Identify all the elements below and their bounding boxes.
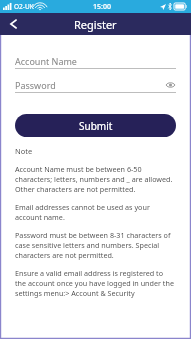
button[interactable]: Password [15, 78, 176, 93]
button[interactable]: Submit [15, 114, 176, 137]
staticText: Password [15, 79, 56, 91]
staticText: Email addresses cannot be used as your a… [15, 202, 176, 222]
staticText: Account Name [15, 55, 77, 67]
button[interactable]: Back [0, 13, 26, 35]
staticText: 15:00 [93, 2, 111, 12]
staticText: Note [15, 146, 33, 156]
button[interactable]: Account Name [15, 54, 176, 69]
staticText: Account Name must be between 6-50 charac… [15, 164, 176, 194]
staticText: Submit [79, 119, 113, 133]
staticText: Register [74, 17, 117, 32]
staticText: Password must be between 8-31 characters… [15, 230, 176, 260]
staticText: O2-UK [14, 2, 34, 11]
staticText: Ensure a valid email address is register… [15, 268, 176, 298]
button[interactable]: Show password [164, 79, 176, 91]
